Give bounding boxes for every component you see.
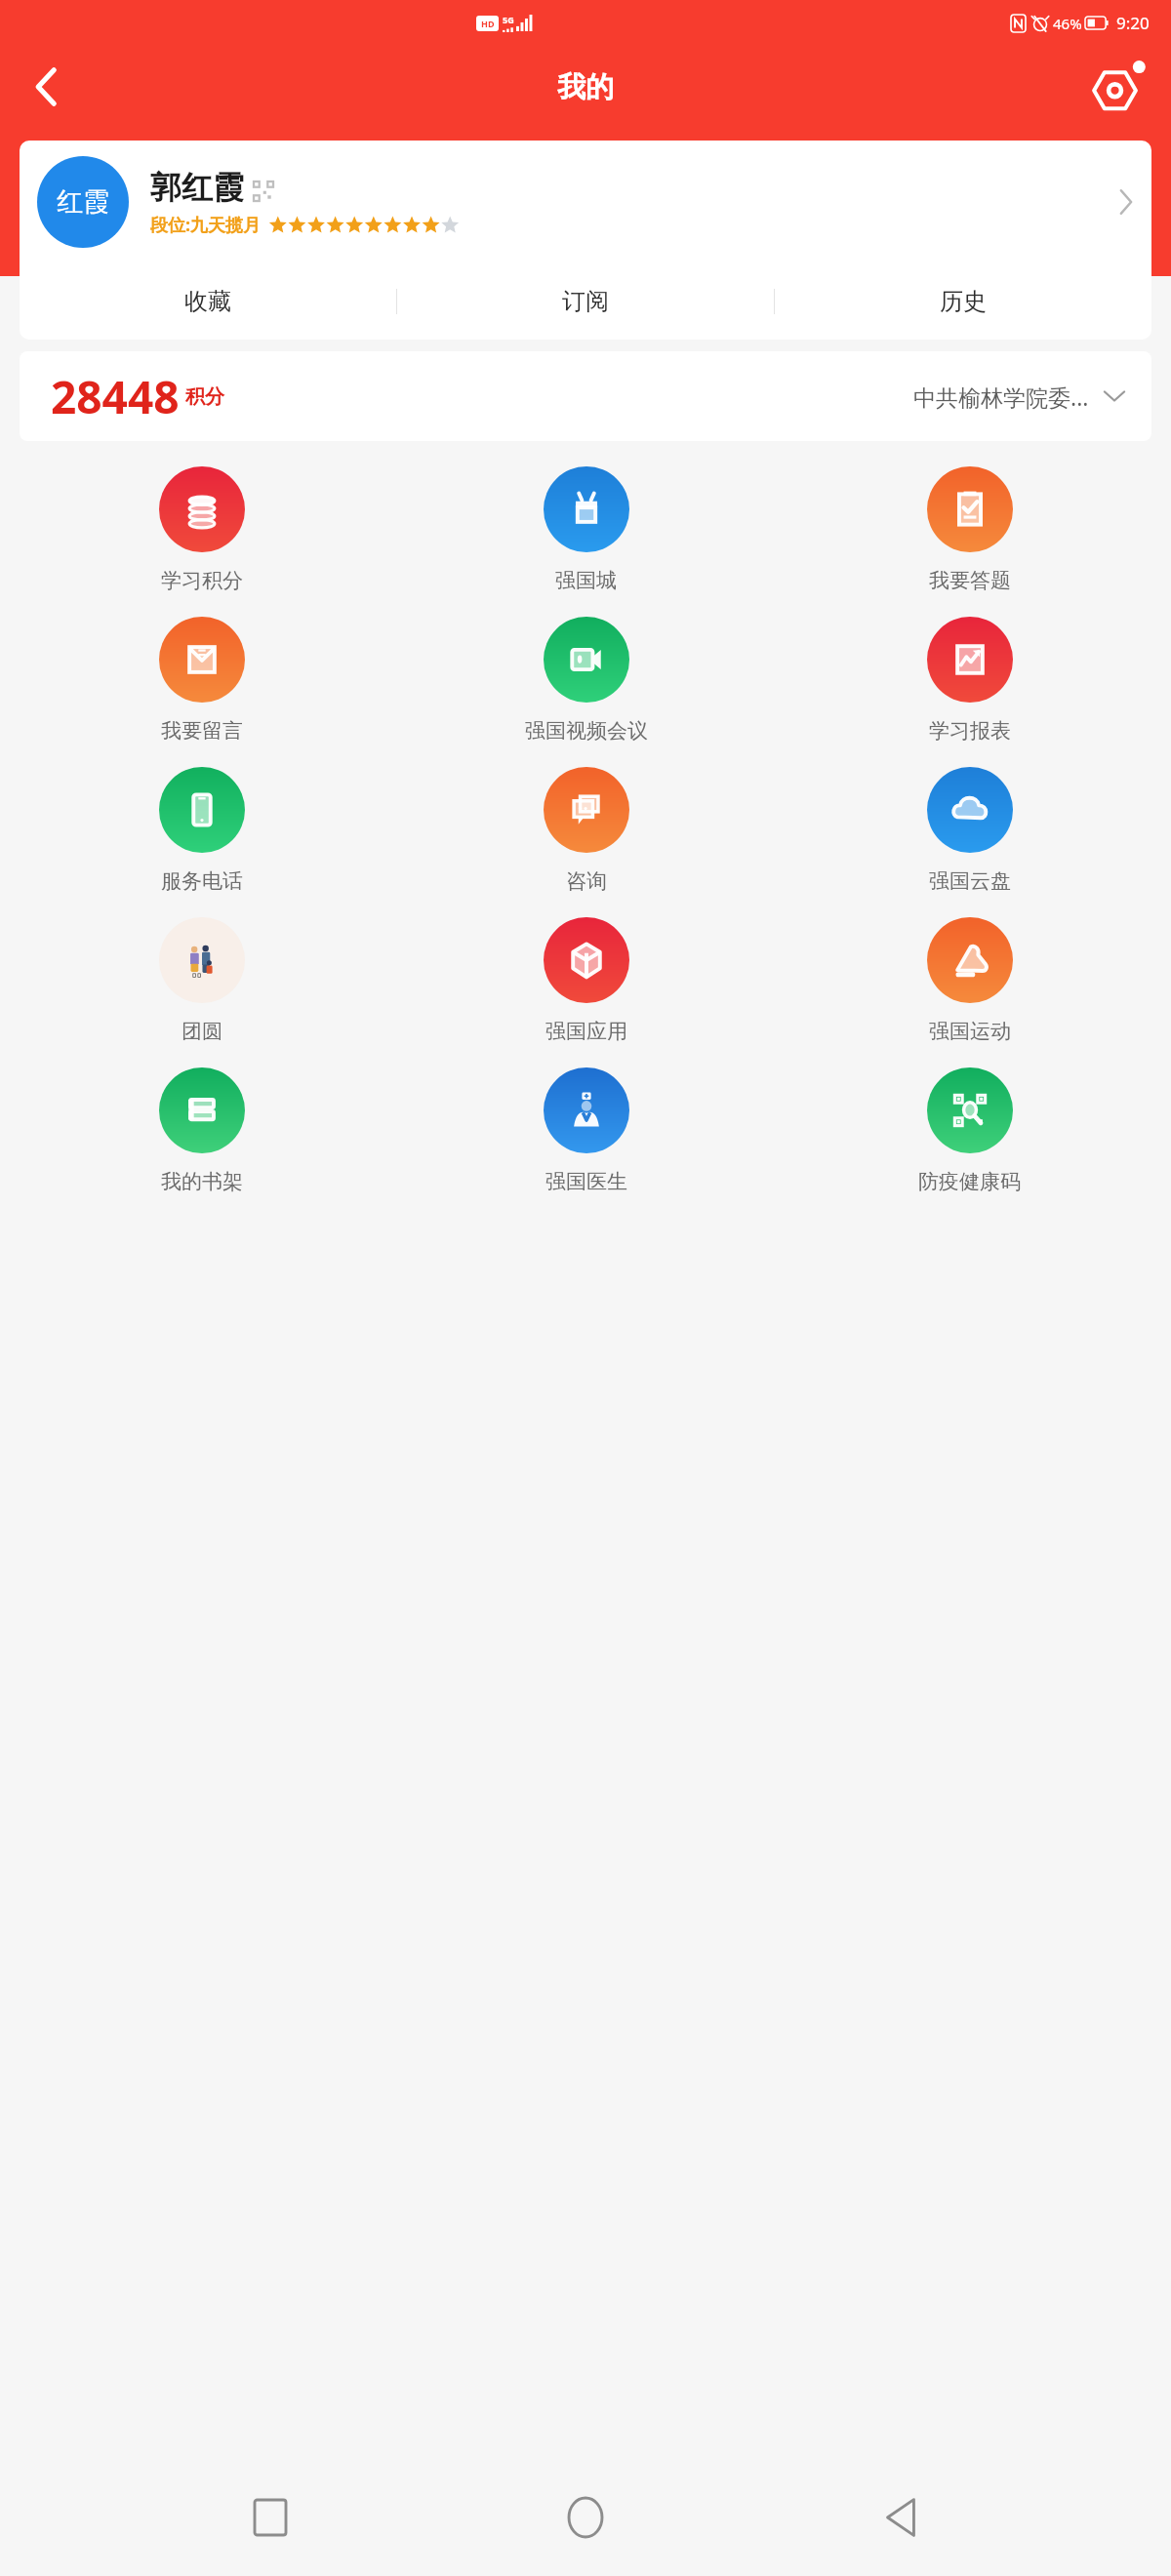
button[interactable]: 服务电话 [10, 755, 394, 906]
button[interactable]: 我的书架 [10, 1056, 394, 1206]
button[interactable]: Settings [1087, 57, 1148, 117]
button[interactable]: 强国视频会议 [394, 605, 778, 755]
staticText: 团圆 [182, 1019, 222, 1044]
staticText: 防疫健康码 [918, 1169, 1021, 1194]
button[interactable]: Home [541, 2473, 630, 2562]
button[interactable]: 学习报表 [778, 605, 1161, 755]
staticText: 5G [503, 14, 514, 25]
button[interactable]: 收藏 [20, 263, 396, 340]
staticText: 强国云盘 [929, 868, 1011, 894]
staticText: 9:20 [1116, 12, 1150, 34]
staticText: 强国城 [555, 568, 617, 593]
staticText: 订阅 [562, 287, 609, 316]
staticText: 红霞 [57, 185, 109, 219]
staticText: 学习报表 [929, 718, 1011, 744]
button[interactable]: 强国云盘 [778, 755, 1161, 906]
button[interactable]: 团圆 [10, 906, 394, 1056]
staticText: 咨询 [566, 868, 607, 894]
staticText: 28448 [51, 366, 180, 427]
button[interactable]: 强国医生 [394, 1056, 778, 1206]
staticText: 积分 [185, 384, 224, 409]
staticText: 服务电话 [161, 868, 243, 894]
staticText: HD [481, 18, 495, 29]
staticText: 强国应用 [545, 1019, 627, 1044]
button[interactable]: 我要答题 [778, 455, 1161, 605]
staticText: 段位:九天揽月 [150, 213, 262, 237]
button[interactable]: 历史 [775, 263, 1151, 340]
button[interactable]: Back [20, 60, 74, 114]
staticText: 我的 [557, 69, 614, 105]
staticText: 强国医生 [545, 1169, 627, 1194]
button[interactable]: 红霞 [20, 141, 1151, 263]
button[interactable]: 强国应用 [394, 906, 778, 1056]
staticText: 强国运动 [929, 1019, 1011, 1044]
button[interactable]: 学习积分 [10, 455, 394, 605]
button[interactable]: Back [856, 2473, 946, 2562]
staticText: 学习积分 [161, 568, 243, 593]
staticText: 我要留言 [161, 718, 243, 744]
button[interactable]: 订阅 [397, 263, 774, 340]
staticText: 强国视频会议 [525, 718, 648, 744]
button[interactable]: Recents [225, 2473, 315, 2562]
button[interactable]: 防疫健康码 [778, 1056, 1161, 1206]
button[interactable]: 28448 [20, 351, 1151, 441]
staticText: 收藏 [184, 287, 231, 316]
button[interactable]: 咨询 [394, 755, 778, 906]
button[interactable]: 强国城 [394, 455, 778, 605]
staticText: 我要答题 [929, 568, 1011, 593]
staticText: 郭红霞 [150, 168, 244, 207]
staticText: 46% [1053, 14, 1082, 33]
button[interactable]: 我要留言 [10, 605, 394, 755]
staticText: 中共榆林学院委... [913, 382, 1089, 412]
staticText: 历史 [940, 287, 987, 316]
button[interactable]: 强国运动 [778, 906, 1161, 1056]
staticText: 我的书架 [161, 1169, 243, 1194]
